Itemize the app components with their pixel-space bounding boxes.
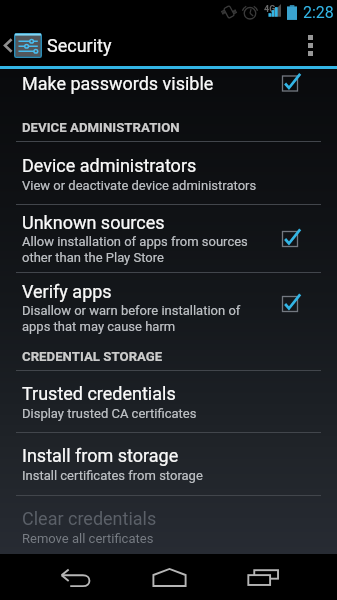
button[interactable]: Navigate up — [0, 33, 185, 58]
button[interactable]: Install from storage — [0, 433, 337, 495]
staticText: Security — [47, 35, 112, 56]
button[interactable]: Unknown sources — [0, 205, 337, 272]
staticText: Clear credentials — [22, 508, 157, 529]
button[interactable]: Trusted credentials — [0, 371, 337, 432]
button[interactable]: Toggle — [278, 292, 302, 316]
button[interactable]: Clear credentials — [0, 496, 337, 554]
staticText: Install from storage — [22, 445, 179, 466]
button[interactable]: Home — [132, 554, 206, 600]
staticText: Device administrators — [22, 155, 197, 176]
staticText: Make passwords visible — [22, 73, 214, 94]
staticText: DEVICE ADMINISTRATION — [22, 120, 180, 135]
button[interactable]: Device administrators — [0, 142, 337, 204]
button[interactable]: Toggle — [278, 73, 302, 94]
button[interactable]: More options — [295, 24, 337, 66]
staticText: CREDENTIAL STORAGE — [22, 349, 163, 364]
other: Settings — [14, 33, 42, 58]
staticText: 2:28 — [303, 3, 334, 22]
staticText: Install certificates from storage — [22, 468, 203, 483]
staticText: Remove all certificates — [22, 531, 154, 545]
staticText: View or deactivate device administrators — [22, 178, 257, 193]
button[interactable]: Toggle — [278, 227, 302, 251]
staticText: Unknown sources — [22, 212, 165, 233]
button[interactable]: Verify apps — [0, 273, 337, 334]
staticText: Display trusted CA certificates — [22, 406, 197, 421]
button[interactable]: Recent apps — [226, 554, 300, 600]
staticText: Verify apps — [22, 281, 112, 302]
button[interactable]: Back — [38, 554, 112, 600]
staticText: Allow installation of apps from sources … — [22, 234, 248, 265]
staticText: Disallow or warn before installation of … — [22, 303, 241, 334]
button[interactable]: Make passwords visible — [0, 73, 337, 94]
staticText: Trusted credentials — [22, 383, 176, 404]
staticText: 4G — [264, 4, 276, 15]
